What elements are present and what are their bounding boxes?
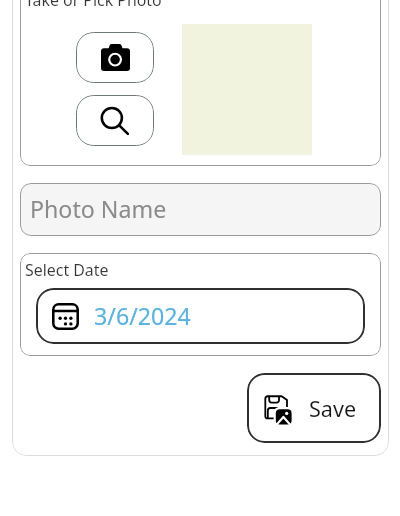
button[interactable]: Save: [247, 373, 381, 443]
staticText: Select Date: [25, 259, 109, 281]
staticText: Photo Name: [30, 193, 167, 225]
staticText: Save: [309, 394, 357, 423]
button[interactable]: Take photo: [76, 32, 154, 83]
button[interactable]: 3/6/2024: [36, 288, 365, 344]
button[interactable]: Photo Name: [20, 183, 381, 236]
staticText: Take or Pick Photo: [25, 0, 162, 11]
button[interactable]: Pick photo: [76, 95, 154, 146]
staticText: 3/6/2024: [94, 300, 191, 332]
